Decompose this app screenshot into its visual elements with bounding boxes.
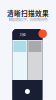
staticText: 清晰扫描效果 xyxy=(7,8,49,18)
staticText: 智能增强文字，去除阴影杂色 xyxy=(8,17,47,22)
staticText: 扫描 xyxy=(19,32,25,37)
